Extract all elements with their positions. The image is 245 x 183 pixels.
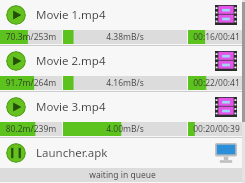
staticText: 80.2m/239m: [0, 123, 62, 135]
staticText: 00:22/00:41: [188, 77, 245, 89]
button[interactable]: Resume download: [0, 138, 245, 183]
button[interactable]: Video thumbnail: [215, 51, 237, 71]
staticText: waiting in queue: [0, 169, 245, 181]
staticText: 4.38mB/s: [63, 31, 187, 43]
button[interactable]: Pause download: [0, 0, 245, 45]
staticText: 4.00mB/s: [63, 123, 187, 135]
button[interactable]: Pause download: [0, 92, 245, 137]
staticText: Movie 3.mp4: [36, 99, 215, 115]
button[interactable]: Pause download: [0, 46, 245, 91]
staticText: 70.3m/253m: [0, 31, 62, 43]
staticText: 00:16/00:41: [188, 31, 245, 43]
staticText: Movie 2.mp4: [36, 53, 215, 69]
staticText: 00:20/00:39: [188, 123, 245, 135]
staticText: 4.16mB/s: [63, 77, 187, 89]
button[interactable]: Video thumbnail: [215, 97, 237, 117]
button[interactable]: Pause download: [6, 97, 26, 117]
button[interactable]: Application file: [215, 143, 237, 163]
button[interactable]: Pause download: [6, 5, 26, 25]
staticText: Movie 1.mp4: [36, 7, 215, 23]
button[interactable]: Resume download: [6, 143, 26, 163]
button[interactable]: Video thumbnail: [215, 5, 237, 25]
staticText: 91.7m/264m: [0, 77, 62, 89]
staticText: Launcher.apk: [36, 145, 215, 161]
button[interactable]: Pause download: [6, 51, 26, 71]
